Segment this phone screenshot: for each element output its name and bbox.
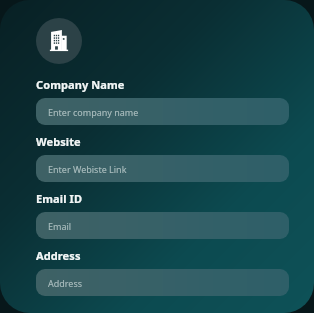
button[interactable]: Address — [36, 269, 289, 296]
staticText: Enter Webiste Link — [48, 163, 127, 175]
staticText: Website — [36, 134, 81, 149]
staticText: Email ID — [36, 191, 83, 206]
button[interactable]: Company logo — [36, 18, 82, 64]
staticText: Address — [48, 277, 83, 289]
staticText: Company Name — [36, 77, 125, 92]
button[interactable]: Email — [36, 212, 289, 239]
staticText: Enter company name — [48, 106, 139, 118]
button[interactable]: Enter Webiste Link — [36, 155, 289, 182]
staticText: Address — [36, 248, 81, 263]
staticText: Email — [48, 220, 72, 232]
button[interactable]: Enter company name — [36, 98, 289, 125]
